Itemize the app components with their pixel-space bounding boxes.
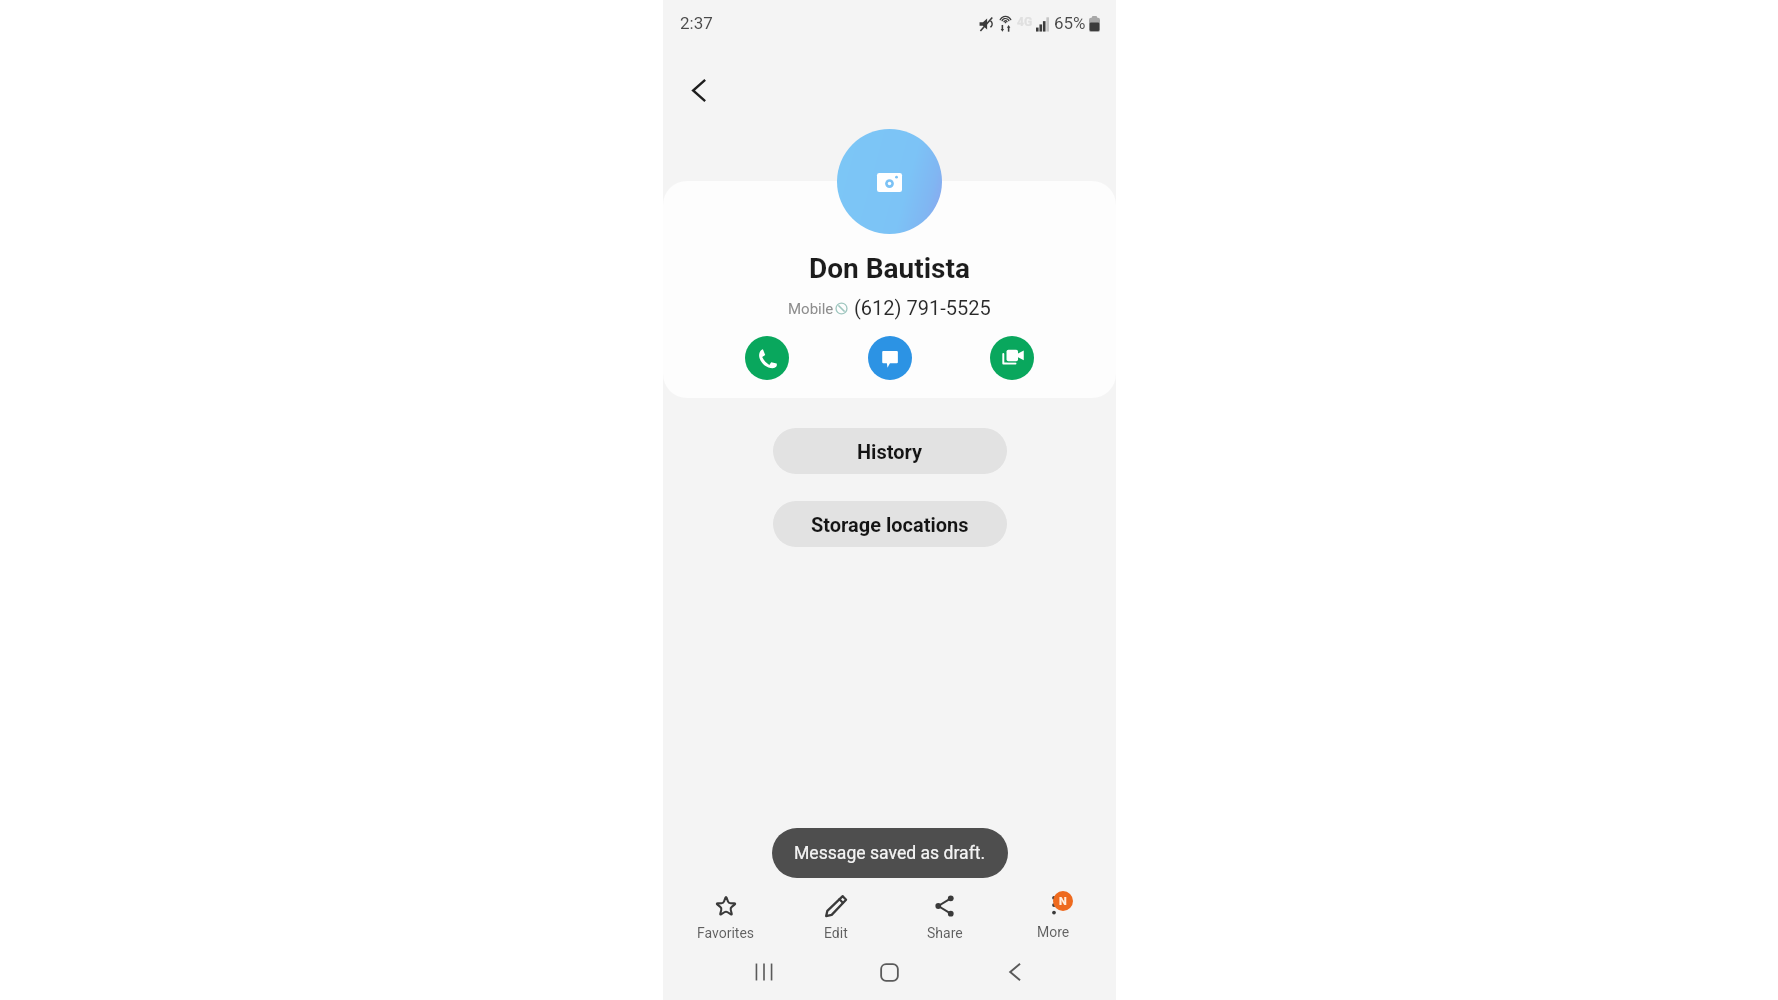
- staticText: Message saved as draft.: [794, 843, 986, 864]
- staticText: Edit: [824, 925, 848, 941]
- button[interactable]: Home: [826, 950, 952, 994]
- staticText: Favorites: [697, 925, 755, 941]
- staticText: Storage locations: [811, 513, 969, 536]
- staticText: N: [1059, 895, 1067, 908]
- button[interactable]: Favorites: [671, 888, 781, 946]
- button[interactable]: Edit: [781, 888, 890, 946]
- button[interactable]: Back: [952, 950, 1078, 994]
- button[interactable]: History: [773, 428, 1007, 474]
- button[interactable]: Profile photo: [837, 129, 942, 234]
- button[interactable]: Message: [868, 336, 912, 380]
- staticText: More: [1037, 924, 1070, 940]
- staticText: 2:37: [680, 13, 713, 33]
- staticText: Don Bautista: [809, 252, 970, 285]
- button[interactable]: Video call: [990, 336, 1034, 380]
- button[interactable]: Storage locations: [773, 501, 1007, 547]
- button[interactable]: Recent apps: [701, 950, 826, 994]
- staticText: (612) 791-5525: [854, 296, 991, 319]
- button[interactable]: Share: [890, 888, 999, 946]
- staticText: Share: [927, 925, 963, 941]
- staticText: 4G: [1017, 15, 1033, 29]
- button[interactable]: Back: [677, 68, 721, 112]
- staticText: History: [857, 440, 923, 463]
- button[interactable]: Call: [745, 336, 789, 380]
- staticText: Mobile: [788, 300, 834, 318]
- staticText: 65%: [1054, 13, 1086, 33]
- button[interactable]: More options: [999, 888, 1108, 946]
